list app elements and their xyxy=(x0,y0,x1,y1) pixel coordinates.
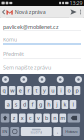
staticText: v xyxy=(37,114,40,122)
staticText: TouchPal xyxy=(30,131,42,134)
button[interactable]: q xyxy=(1,86,7,95)
staticText: b xyxy=(45,114,48,122)
staticText: l xyxy=(72,101,73,108)
button[interactable]: Done xyxy=(63,127,80,136)
button[interactable]: Space xyxy=(21,127,52,136)
button[interactable]: u xyxy=(49,86,56,95)
button[interactable]: Send xyxy=(69,6,78,18)
button[interactable]: . xyxy=(53,127,61,136)
staticText: g xyxy=(39,101,42,108)
button[interactable]: d xyxy=(21,100,28,109)
staticText: p xyxy=(75,87,78,94)
staticText: k xyxy=(63,101,66,108)
staticText: j xyxy=(56,101,57,108)
staticText: y xyxy=(43,87,46,94)
button[interactable]: a xyxy=(5,100,11,109)
staticText: 13:29 xyxy=(69,0,82,7)
button[interactable]: Handwriting xyxy=(38,76,45,83)
staticText: a xyxy=(7,101,10,108)
button[interactable]: More options xyxy=(78,6,83,18)
button[interactable]: t xyxy=(33,86,40,95)
staticText: u xyxy=(51,87,54,94)
staticText: d xyxy=(23,101,26,108)
button[interactable]: b xyxy=(43,113,50,122)
staticText: Předmět xyxy=(3,50,24,58)
staticText: t xyxy=(35,87,37,94)
button[interactable]: l xyxy=(70,100,76,109)
button[interactable]: Change language xyxy=(1,127,9,136)
button[interactable]: Backspace xyxy=(68,113,80,122)
button[interactable]: e xyxy=(17,86,24,95)
staticText: Nová zpráva xyxy=(15,8,46,16)
button[interactable]: c xyxy=(27,113,34,122)
staticText: x xyxy=(21,114,24,122)
staticText: Komu xyxy=(3,36,17,43)
button[interactable]: n xyxy=(51,113,58,122)
staticText: r xyxy=(27,87,29,94)
staticText: Hotovo xyxy=(65,129,77,134)
staticText: pavlicek@mobilenet.cz xyxy=(3,23,59,31)
button[interactable]: h xyxy=(45,100,52,109)
staticText: EN xyxy=(2,129,7,134)
button[interactable]: k xyxy=(62,100,68,109)
staticText: i xyxy=(60,87,61,94)
button[interactable]: z xyxy=(11,113,17,122)
button[interactable]: j xyxy=(53,100,60,109)
staticText: o xyxy=(67,87,70,94)
staticText: s xyxy=(15,101,18,108)
button[interactable]: x xyxy=(19,113,26,122)
button[interactable]: o xyxy=(66,86,72,95)
button[interactable]: y xyxy=(41,86,48,95)
staticText: h xyxy=(47,101,50,108)
staticText: . xyxy=(57,128,58,135)
staticText: Sem napište zprávu xyxy=(3,64,51,71)
staticText: q xyxy=(3,87,6,94)
button[interactable]: Back xyxy=(1,6,6,18)
staticText: w xyxy=(10,87,14,94)
button[interactable]: Keyboard settings xyxy=(2,76,9,83)
button[interactable]: r xyxy=(25,86,32,95)
staticText: e xyxy=(19,87,22,94)
button[interactable]: w xyxy=(9,86,15,95)
button[interactable]: v xyxy=(35,113,42,122)
staticText: f xyxy=(31,101,33,108)
button[interactable]: m xyxy=(59,113,66,122)
button[interactable]: i xyxy=(57,86,64,95)
button[interactable]: s xyxy=(13,100,20,109)
button[interactable]: Sticker xyxy=(57,76,64,83)
button[interactable]: p xyxy=(74,86,80,95)
staticText: c xyxy=(29,114,32,122)
staticText: z xyxy=(13,114,16,122)
staticText: n xyxy=(53,114,56,122)
staticText: m xyxy=(60,114,65,122)
button[interactable]: Emoji xyxy=(10,127,19,136)
button[interactable]: Shift xyxy=(1,113,9,122)
button[interactable]: g xyxy=(37,100,44,109)
button[interactable]: Hide keyboard xyxy=(75,76,82,83)
button[interactable]: f xyxy=(29,100,36,109)
button[interactable]: Voice input xyxy=(20,76,27,83)
